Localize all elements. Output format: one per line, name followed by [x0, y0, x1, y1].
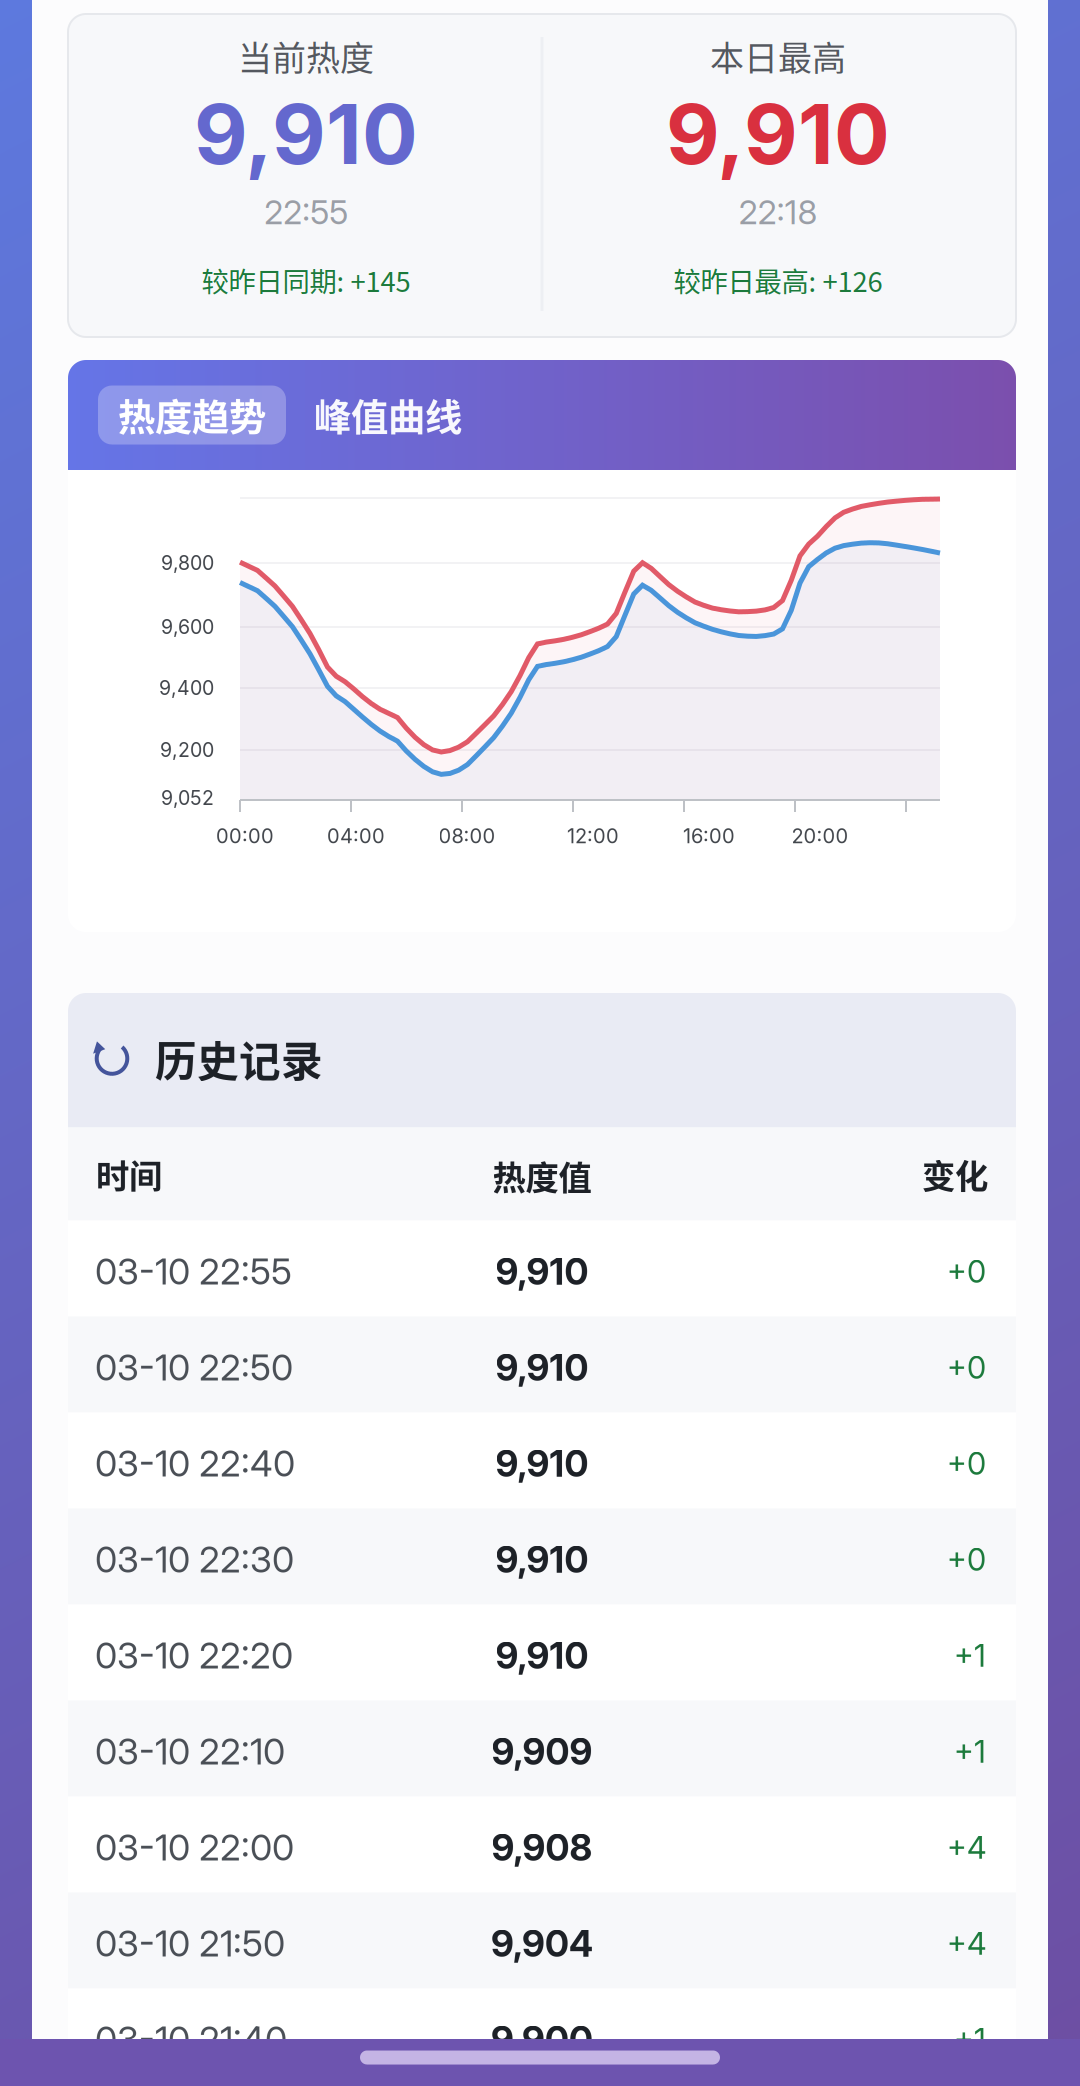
- staticText: 热度趋势: [118, 388, 266, 442]
- staticText: 03-10 21:50: [95, 1922, 285, 1965]
- staticText: +1: [954, 1733, 986, 1770]
- button[interactable]: 03-10 22:10: [68, 1700, 1016, 1796]
- staticText: 22:18: [738, 192, 817, 232]
- staticText: +1: [954, 2021, 986, 2058]
- staticText: 当前热度: [238, 31, 374, 81]
- staticText: 9,910: [495, 1633, 588, 1677]
- staticText: 9,800: [161, 551, 214, 575]
- staticText: 9,900: [491, 2017, 593, 2061]
- staticText: 03-10 22:30: [95, 1538, 294, 1581]
- staticText: 9,904: [491, 1921, 593, 1965]
- staticText: 04:00: [327, 824, 385, 848]
- staticText: 9,910: [495, 1441, 588, 1485]
- button[interactable]: 03-10 22:30: [68, 1508, 1016, 1604]
- staticText: 03-10 22:40: [95, 1442, 295, 1485]
- staticText: 9,909: [491, 1729, 592, 1773]
- staticText: +4: [947, 1829, 986, 1866]
- staticText: +0: [947, 1445, 986, 1482]
- button[interactable]: 03-10 21:50: [68, 1892, 1016, 1988]
- button[interactable]: 热度趋势: [98, 385, 286, 444]
- staticText: 00:00: [216, 824, 274, 848]
- button[interactable]: 03-10 21:40: [68, 1988, 1016, 2084]
- staticText: +0: [947, 1253, 986, 1290]
- staticText: 16:00: [683, 824, 735, 848]
- button[interactable]: 03-10 22:20: [68, 1604, 1016, 1700]
- staticText: 9,052: [161, 786, 214, 810]
- staticText: 变化: [922, 1150, 988, 1198]
- button[interactable]: 03-10 22:55: [68, 1220, 1016, 1316]
- staticText: 20:00: [791, 824, 848, 848]
- button[interactable]: 03-10 22:00: [68, 1796, 1016, 1892]
- staticText: 9,910: [194, 84, 418, 184]
- staticText: +4: [947, 1925, 986, 1962]
- staticText: 时间: [96, 1150, 162, 1198]
- staticText: 03-10 22:55: [95, 1250, 292, 1293]
- button[interactable]: 03-10 22:50: [68, 1316, 1016, 1412]
- staticText: 9,400: [159, 676, 214, 700]
- staticText: 9,600: [161, 615, 214, 639]
- staticText: +1: [954, 1637, 986, 1674]
- staticText: 08:00: [438, 824, 495, 848]
- staticText: 03-10 22:20: [95, 1634, 293, 1677]
- staticText: +0: [947, 1541, 986, 1578]
- staticText: 本日最高: [710, 31, 846, 81]
- staticText: +0: [947, 1349, 986, 1386]
- staticText: 较昨日同期: +145: [201, 260, 410, 300]
- staticText: 9,910: [495, 1249, 588, 1293]
- staticText: 9,200: [160, 738, 214, 762]
- staticText: 历史记录: [155, 1028, 323, 1089]
- staticText: 9,908: [491, 1825, 592, 1869]
- staticText: 12:00: [567, 824, 619, 848]
- staticText: 9,910: [666, 84, 890, 184]
- staticText: 03-10 22:10: [95, 1730, 285, 1773]
- staticText: 03-10 21:40: [95, 2018, 287, 2061]
- staticText: 热度值: [492, 1151, 591, 1200]
- staticText: 较昨日最高: +126: [673, 260, 882, 300]
- staticText: 9,910: [495, 1345, 588, 1389]
- button[interactable]: 03-10 22:40: [68, 1412, 1016, 1508]
- staticText: 22:55: [264, 192, 348, 232]
- staticText: 03-10 22:50: [95, 1346, 293, 1389]
- button[interactable]: 峰值曲线: [286, 385, 490, 444]
- staticText: 9,910: [495, 1537, 588, 1581]
- staticText: 03-10 22:00: [95, 1826, 294, 1869]
- staticText: 峰值曲线: [314, 388, 462, 442]
